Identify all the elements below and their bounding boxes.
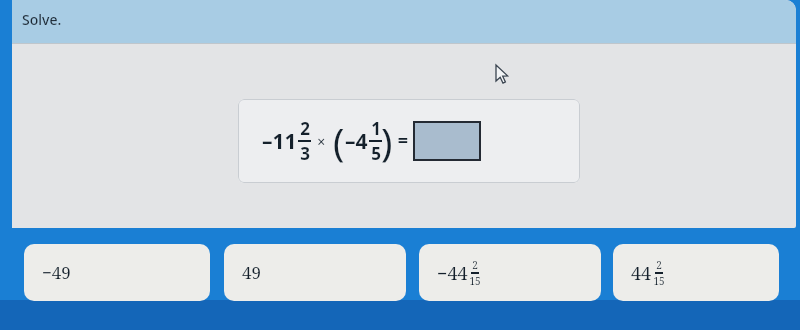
button[interactable]: −44 <box>419 244 601 301</box>
button[interactable]: 44 <box>613 244 779 301</box>
staticText: 15 <box>653 274 665 288</box>
staticText: Solve. <box>22 10 62 29</box>
staticText: 15 <box>469 274 481 288</box>
staticText: 2 <box>300 117 310 140</box>
staticText: –11 <box>262 127 297 156</box>
staticText: ) <box>381 115 393 167</box>
staticText: 3 <box>300 142 310 165</box>
staticText: −44 <box>437 261 468 286</box>
staticText: 2 <box>472 258 478 272</box>
staticText: –4 <box>345 127 368 156</box>
staticText: 5 <box>371 142 381 165</box>
staticText: −49 <box>42 261 71 284</box>
button[interactable]: 49 <box>224 244 406 301</box>
staticText: 49 <box>242 261 262 284</box>
button[interactable]: −49 <box>24 244 210 301</box>
staticText: ( <box>333 115 345 167</box>
staticText: 1 <box>371 117 381 140</box>
staticText: × <box>310 132 333 151</box>
button[interactable]: Answer input box <box>413 121 481 161</box>
staticText: 2 <box>656 258 662 272</box>
staticText: = <box>393 128 413 153</box>
staticText: 44 <box>631 261 652 286</box>
